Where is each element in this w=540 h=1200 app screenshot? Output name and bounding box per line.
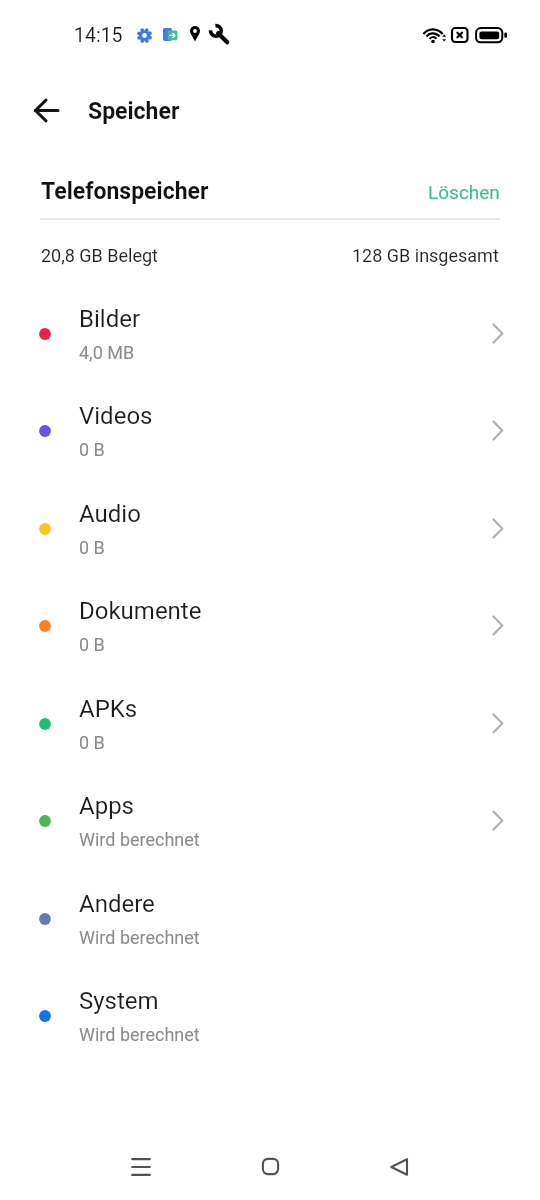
staticText: 0 B	[79, 439, 105, 460]
button[interactable]	[115, 1141, 166, 1192]
button[interactable]: APKs	[0, 675, 540, 772]
button[interactable]: Löschen	[428, 181, 500, 203]
staticText: Wird berechnet	[79, 829, 200, 850]
staticText: Andere	[79, 890, 155, 918]
staticText: Speicher	[88, 98, 180, 125]
button[interactable]: Andere	[0, 870, 540, 967]
button[interactable]: Bilder	[0, 285, 540, 382]
staticText: 0 B	[79, 537, 105, 558]
button[interactable]: Dokumente	[0, 577, 540, 674]
button[interactable]: Videos	[0, 382, 540, 479]
button[interactable]: System	[0, 967, 540, 1064]
staticText: 20,8 GB Belegt	[41, 245, 158, 266]
staticText: Telefonspeicher	[41, 178, 209, 205]
staticText: 0 B	[79, 634, 105, 655]
staticText: Bilder	[79, 305, 141, 333]
staticText: Dokumente	[79, 597, 202, 625]
staticText: 128 GB insgesamt	[352, 245, 499, 266]
staticText: Audio	[79, 500, 141, 528]
staticText: 0 B	[79, 732, 105, 753]
staticText: Wird berechnet	[79, 927, 200, 948]
button[interactable]: Apps	[0, 772, 540, 869]
staticText: Apps	[79, 792, 134, 820]
button[interactable]	[22, 86, 70, 134]
staticText: 14:15	[74, 24, 123, 47]
staticText: APKs	[79, 695, 138, 723]
button[interactable]: Audio	[0, 480, 540, 577]
staticText: System	[79, 987, 159, 1015]
staticText: Wird berechnet	[79, 1024, 200, 1045]
staticText: Videos	[79, 402, 153, 430]
staticText: 4,0 MB	[79, 342, 135, 363]
button[interactable]	[245, 1141, 296, 1192]
button[interactable]	[373, 1141, 424, 1192]
staticText: Löschen	[428, 181, 500, 203]
